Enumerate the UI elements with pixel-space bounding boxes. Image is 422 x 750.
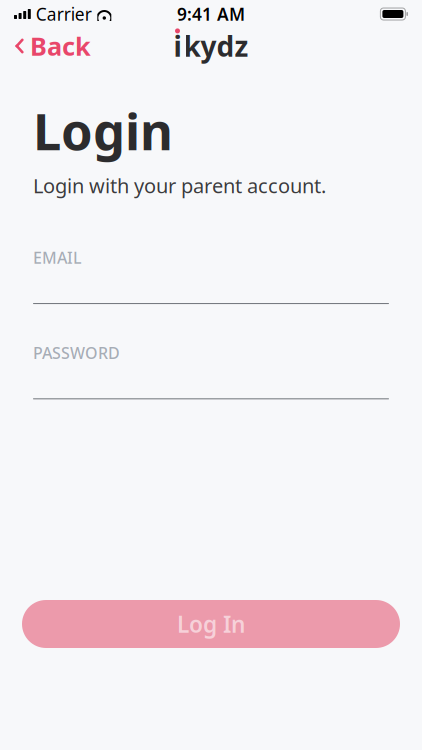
staticText: Carrier	[36, 2, 92, 25]
button[interactable]: Log In	[22, 600, 400, 648]
staticText: Log In	[177, 609, 245, 639]
staticText: 9:41 AM	[177, 2, 245, 25]
button[interactable]: Back	[0, 23, 105, 69]
button[interactable]: EMAIL	[33, 268, 389, 304]
staticText: Login	[33, 97, 173, 164]
staticText: Back	[30, 29, 91, 63]
staticText: kydz	[183, 27, 248, 65]
staticText: i	[173, 27, 181, 65]
staticText: Login with your parent account.	[33, 172, 326, 199]
staticText: EMAIL	[33, 247, 82, 268]
staticText: PASSWORD	[33, 342, 120, 363]
button[interactable]: PASSWORD	[33, 363, 389, 399]
